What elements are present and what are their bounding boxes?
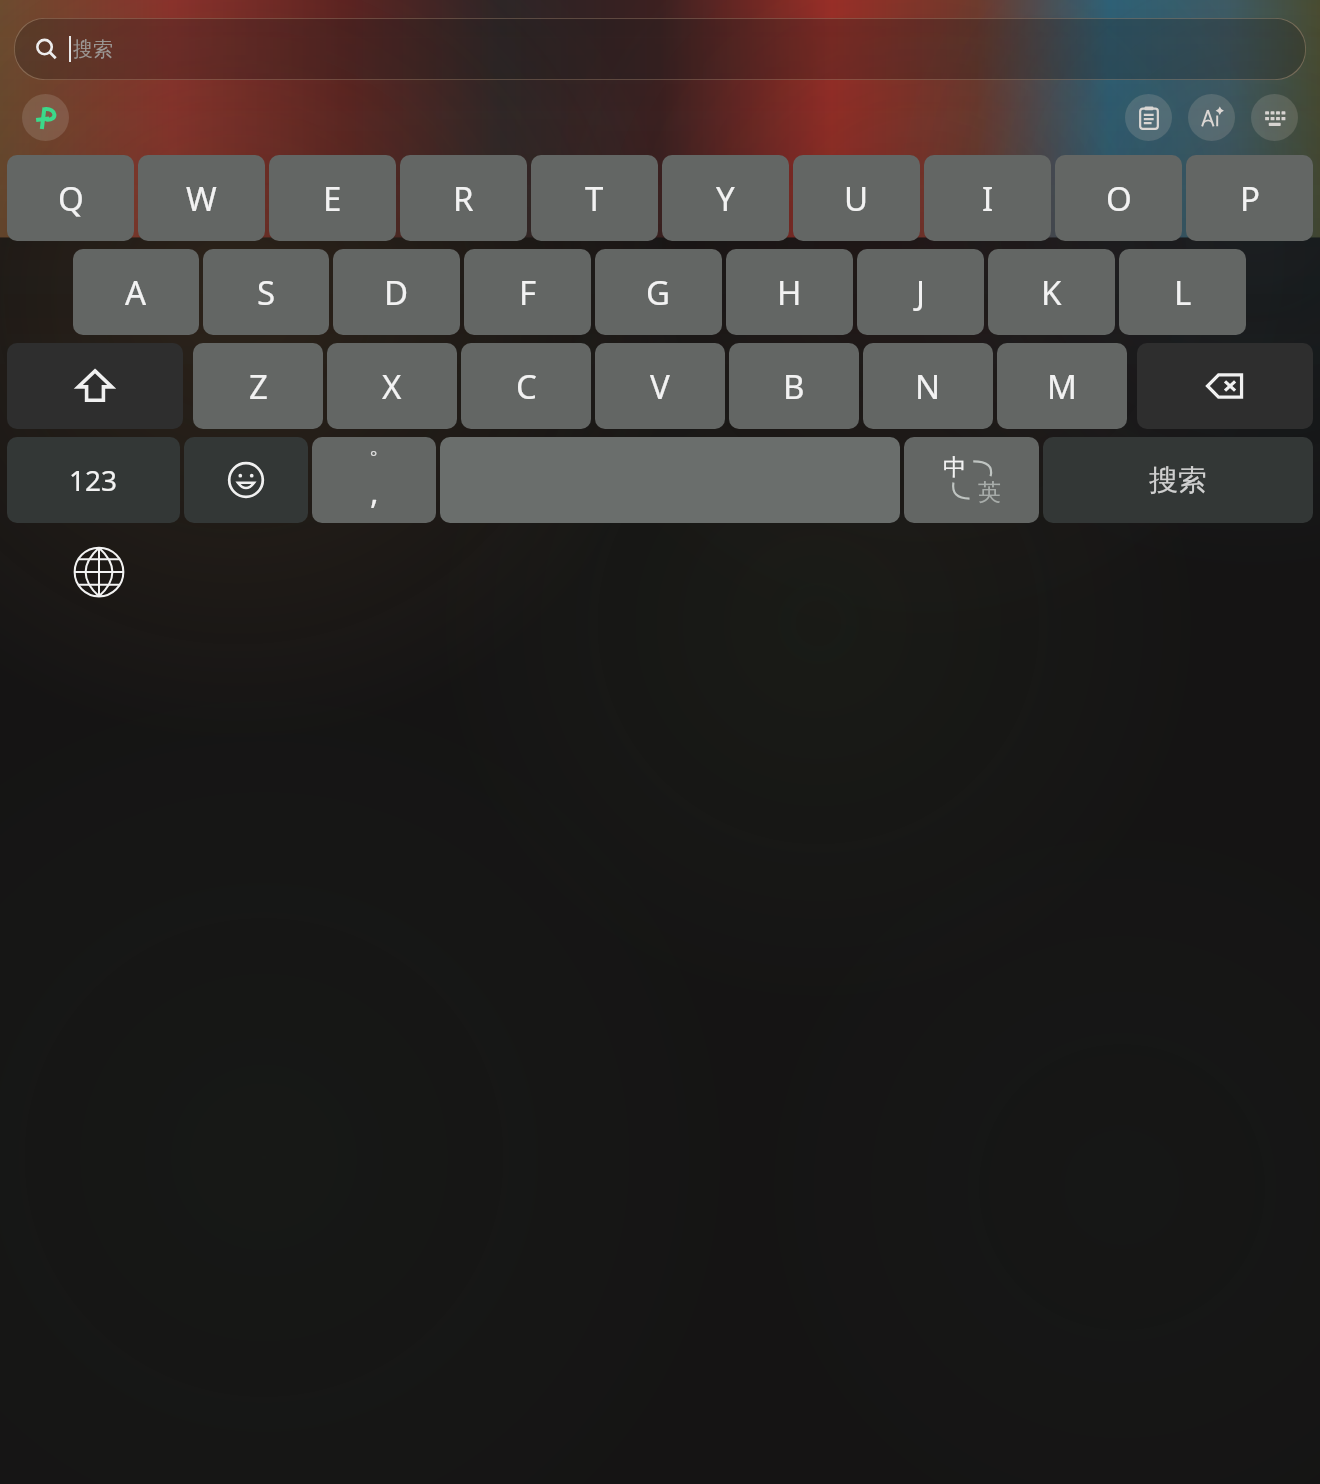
staticText: E: [323, 176, 342, 221]
staticText: C: [516, 364, 537, 409]
staticText: X: [382, 364, 402, 409]
button[interactable]: T: [531, 155, 658, 241]
button[interactable]: Input method logo: [22, 94, 69, 141]
staticText: 123: [69, 461, 118, 499]
button[interactable]: D: [333, 249, 460, 335]
button[interactable]: Y: [662, 155, 789, 241]
button[interactable]: N: [863, 343, 993, 429]
button[interactable]: Z: [193, 343, 323, 429]
button[interactable]: F: [464, 249, 591, 335]
staticText: S: [257, 270, 276, 315]
button[interactable]: AI assistant: [1188, 94, 1235, 141]
button[interactable]: R: [400, 155, 527, 241]
button[interactable]: U: [793, 155, 920, 241]
staticText: D: [384, 270, 409, 315]
button[interactable]: P: [1186, 155, 1313, 241]
staticText: B: [783, 364, 805, 409]
staticText: O: [1106, 176, 1132, 221]
button[interactable]: Switch Chinese English: [904, 437, 1039, 523]
staticText: F: [519, 270, 537, 315]
button[interactable]: K: [988, 249, 1115, 335]
button[interactable]: Keyboard layout: [1251, 94, 1298, 141]
staticText: T: [585, 176, 604, 221]
button[interactable]: Q: [7, 155, 134, 241]
staticText: A: [125, 270, 147, 315]
staticText: 搜索: [1149, 462, 1207, 499]
staticText: L: [1174, 270, 1192, 315]
staticText: M: [1047, 364, 1077, 409]
staticText: K: [1041, 270, 1062, 315]
button[interactable]: Clipboard: [1125, 94, 1172, 141]
staticText: P: [1240, 176, 1260, 221]
staticText: 中: [943, 453, 966, 482]
button[interactable]: Backspace: [1137, 343, 1313, 429]
staticText: N: [915, 364, 941, 409]
button[interactable]: J: [857, 249, 984, 335]
button[interactable]: W: [138, 155, 265, 241]
button[interactable]: I: [924, 155, 1051, 241]
button[interactable]: G: [595, 249, 722, 335]
button[interactable]: Change language: [68, 541, 130, 603]
button[interactable]: L: [1119, 249, 1246, 335]
button[interactable]: °: [312, 437, 436, 523]
button[interactable]: Space: [440, 437, 900, 523]
button[interactable]: A: [73, 249, 199, 335]
button[interactable]: M: [997, 343, 1127, 429]
button[interactable]: Shift: [7, 343, 183, 429]
staticText: 英: [978, 478, 1001, 507]
staticText: U: [844, 176, 869, 221]
button[interactable]: O: [1055, 155, 1182, 241]
button[interactable]: 123: [7, 437, 180, 523]
staticText: ,: [370, 470, 379, 514]
staticText: °: [370, 445, 378, 468]
button[interactable]: X: [327, 343, 457, 429]
button[interactable]: S: [203, 249, 329, 335]
staticText: R: [453, 176, 474, 221]
staticText: V: [650, 364, 670, 409]
button[interactable]: C: [461, 343, 591, 429]
button[interactable]: B: [729, 343, 859, 429]
staticText: 搜索: [73, 37, 113, 62]
staticText: I: [982, 176, 994, 221]
button[interactable]: V: [595, 343, 725, 429]
button[interactable]: 搜索: [1043, 437, 1313, 523]
staticText: J: [916, 270, 926, 315]
button[interactable]: H: [726, 249, 853, 335]
staticText: H: [777, 270, 802, 315]
staticText: Q: [58, 176, 84, 221]
staticText: Y: [716, 176, 735, 221]
button[interactable]: 搜索: [14, 18, 1306, 80]
staticText: W: [186, 176, 217, 221]
button[interactable]: E: [269, 155, 396, 241]
staticText: G: [646, 270, 671, 315]
button[interactable]: Emoji: [184, 437, 308, 523]
staticText: Z: [249, 364, 268, 409]
